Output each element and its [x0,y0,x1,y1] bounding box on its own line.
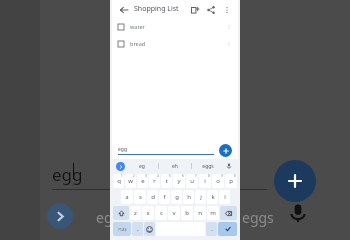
staticText: t [165,177,168,185]
button[interactable]: More options [220,3,233,16]
staticText: e [141,177,145,185]
button[interactable]: l [219,190,230,204]
staticText: k [211,193,215,201]
staticText: d [151,193,155,201]
button[interactable]: o [212,174,224,188]
button[interactable]: Enter [218,222,237,236]
staticText: 6 [182,174,184,178]
button[interactable]: f [159,190,170,204]
staticText: s [139,193,142,201]
button[interactable]: Emoji [144,222,155,236]
button[interactable]: Back [117,3,130,16]
staticText: g [175,193,179,201]
button[interactable]: water [118,18,232,35]
staticText: . [211,225,213,233]
staticText: x [146,209,150,217]
staticText: 3 [145,174,147,178]
staticText: f [163,193,166,201]
staticText: eh [172,163,178,170]
button[interactable]: Backspace [220,206,237,220]
staticText: l [224,193,226,201]
staticText: p [229,177,233,185]
staticText: z [134,209,137,217]
button[interactable]: b [181,206,193,220]
button[interactable]: d [147,190,158,204]
staticText: ?123 [118,227,127,232]
staticText: u [190,177,194,185]
staticText: 2 [133,174,135,178]
staticText: eg [139,163,145,170]
staticText: 1 [121,174,123,178]
button[interactable]: n [194,206,206,220]
button[interactable]: h [183,190,194,204]
button[interactable]: Voice input [288,203,308,223]
staticText: r [153,177,156,185]
button[interactable]: e [137,174,148,188]
staticText: n [198,209,202,217]
staticText: egg [52,163,83,186]
staticText: egg [118,146,127,153]
staticText: bread [130,40,146,47]
button[interactable]: eg [125,159,158,173]
staticText: y [177,177,181,185]
button[interactable]: v [168,206,180,220]
button[interactable]: y [173,174,185,188]
button[interactable]: Add item [274,160,316,202]
button[interactable]: Add people [188,3,201,16]
staticText: 5 [169,174,171,178]
staticText: h [187,193,191,201]
button[interactable]: x [142,206,154,220]
button[interactable]: i [199,174,211,188]
button[interactable]: bread [118,35,232,52]
button[interactable]: r [149,174,160,188]
staticText: v [172,209,176,217]
staticText: water [130,23,145,30]
button[interactable]: k [207,190,218,204]
staticText: o [216,177,220,185]
staticText: 9 [221,174,223,178]
button[interactable]: c [155,206,167,220]
staticText: 7 [195,174,197,178]
button[interactable]: Assistant [116,162,125,171]
staticText: 0 [234,174,236,178]
staticText: eg [96,208,113,227]
button[interactable]: Share [204,3,217,16]
button[interactable]: w [125,174,136,188]
staticText: c [160,209,163,217]
button[interactable]: eggs [192,159,224,173]
button[interactable]: egg [118,146,214,155]
button[interactable]: Shift [113,206,129,220]
staticText: m [210,209,216,217]
button[interactable]: Voice typing [224,161,234,171]
button[interactable]: s [134,190,146,204]
staticText: w [128,177,133,185]
staticText: j [200,193,202,201]
button[interactable]: j [195,190,206,204]
staticText: i [204,177,206,185]
button[interactable]: eh [159,159,191,173]
button[interactable]: p [225,174,237,188]
button[interactable]: g [171,190,182,204]
button[interactable]: m [207,206,219,220]
button[interactable]: a [121,190,133,204]
staticText: a [125,193,129,201]
button[interactable]: . [206,222,217,236]
button[interactable]: , [132,222,143,236]
staticText: eggs [242,208,274,227]
button[interactable]: Send [219,144,232,157]
staticText: b [185,209,189,217]
button[interactable]: q [113,174,124,188]
staticText: , [137,225,139,233]
staticText: eggs [202,163,214,170]
button[interactable]: z [130,206,141,220]
staticText: Shopping List [134,4,179,14]
button[interactable]: ?123 [113,222,131,236]
staticText: q [117,177,121,185]
staticText: 8 [208,174,210,178]
button[interactable]: t [161,174,172,188]
staticText: 4 [157,174,159,178]
button[interactable]: u [186,174,198,188]
